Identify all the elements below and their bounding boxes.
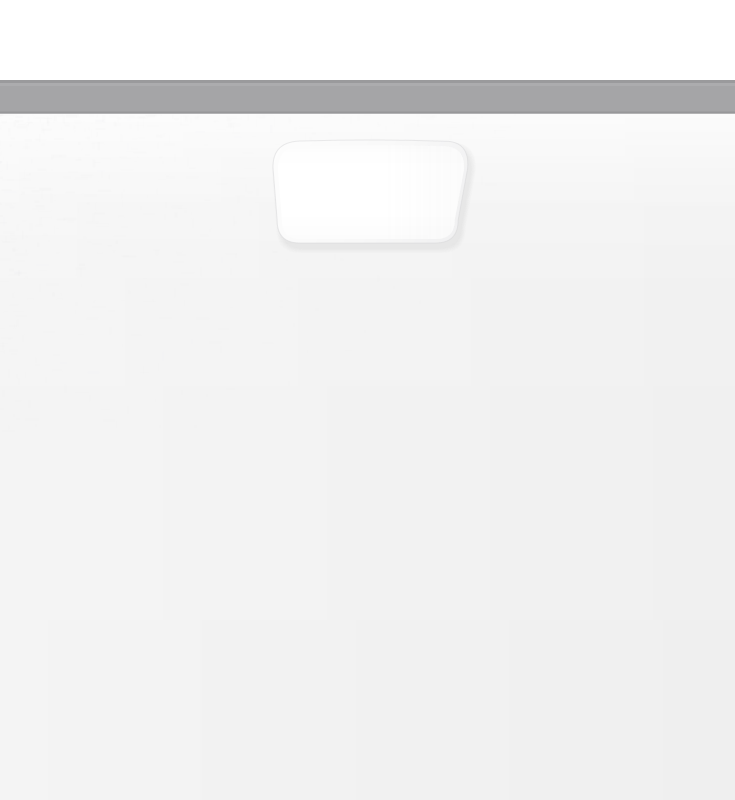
button[interactable]: Photo <box>0 0 735 800</box>
